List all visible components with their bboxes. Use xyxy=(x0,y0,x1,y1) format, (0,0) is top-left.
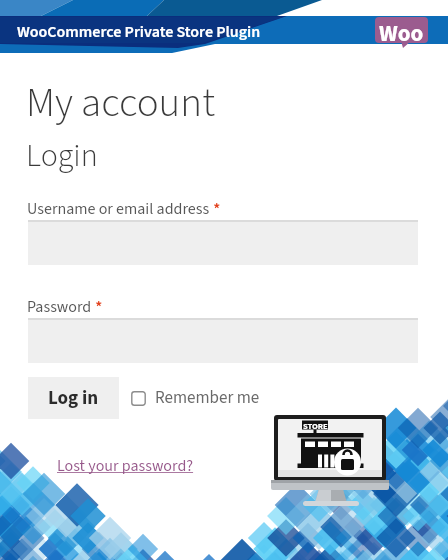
button[interactable]: Log in xyxy=(28,377,119,419)
staticText: Login xyxy=(26,133,98,179)
staticText: Woo xyxy=(379,17,424,49)
staticText: * xyxy=(92,296,103,319)
staticText: Password xyxy=(27,296,92,319)
staticText: WooCommerce Private Store Plugin xyxy=(17,21,261,44)
staticText: Remember me xyxy=(155,386,260,410)
button[interactable]: Remember me xyxy=(131,386,260,410)
staticText: STORE xyxy=(303,420,328,432)
staticText: Username or email address xyxy=(27,198,210,221)
staticText: Lost your password? xyxy=(57,455,194,478)
staticText: Log in xyxy=(48,385,99,412)
button[interactable] xyxy=(28,318,418,363)
button[interactable]: WooCommerce logo xyxy=(375,17,431,49)
button[interactable]: Lost your password? xyxy=(57,455,194,478)
staticText: * xyxy=(210,198,221,221)
button[interactable] xyxy=(28,220,418,265)
staticText: My account xyxy=(26,74,215,132)
